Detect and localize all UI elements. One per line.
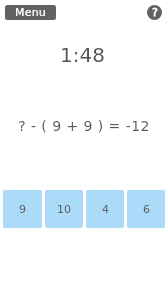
staticText: 6	[143, 203, 150, 216]
button[interactable]: Menu	[5, 5, 56, 20]
staticText: 4	[102, 203, 109, 216]
button[interactable]: 10	[45, 190, 83, 228]
staticText: 10	[57, 203, 71, 216]
staticText: ? - ( 9 + 9 ) = -12	[18, 118, 150, 134]
button[interactable]: 4	[86, 190, 124, 228]
staticText: 1:48	[60, 43, 105, 66]
staticText: 9	[19, 203, 26, 216]
button[interactable]: Help	[147, 5, 162, 20]
staticText: ?	[152, 6, 158, 19]
button[interactable]: 9	[3, 190, 42, 228]
button[interactable]: 6	[127, 190, 165, 228]
staticText: Menu	[15, 6, 47, 19]
